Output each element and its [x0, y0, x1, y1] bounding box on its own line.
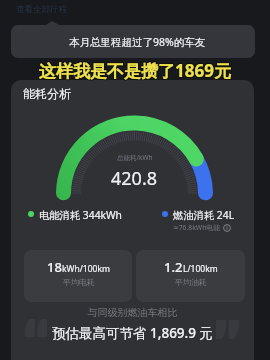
- staticText: 总能耗/kWh: [117, 153, 153, 162]
- staticText: 18: [47, 258, 62, 276]
- staticText: kWh/100km: [62, 263, 110, 275]
- staticText: 查看全部行程: [16, 4, 67, 15]
- staticText: 平均电耗: [63, 277, 95, 287]
- button[interactable]: 能耗换算说明: [222, 223, 231, 232]
- staticText: 这样我是不是攒了1869元: [39, 59, 231, 82]
- staticText: 这样我是不是攒了1869元: [40, 59, 232, 82]
- staticText: 能耗分析: [23, 86, 71, 101]
- staticText: 预估最高可节省 1,869.9 元: [11, 324, 254, 342]
- staticText: 这样我是不是攒了1869元: [38, 58, 230, 81]
- staticText: 这样我是不是攒了1869元: [40, 60, 232, 83]
- staticText: 这样我是不是攒了1869元: [39, 60, 231, 83]
- staticText: 1.2: [164, 258, 183, 276]
- staticText: ≈76.8kWh电能: [173, 223, 220, 232]
- staticText: 这样我是不是攒了1869元: [38, 60, 230, 83]
- button[interactable]: [11, 25, 255, 58]
- staticText: 这样我是不是攒了1869元: [40, 58, 232, 81]
- staticText: 这样我是不是攒了1869元: [38, 59, 230, 82]
- staticText: 这样我是不是攒了1869元: [39, 58, 231, 81]
- staticText: L/100km: [183, 263, 218, 275]
- staticText: 420.8: [111, 166, 158, 191]
- button[interactable]: 1.2: [136, 250, 245, 302]
- staticText: 本月总里程超过了98%的车友: [69, 35, 206, 49]
- staticText: 平均油耗: [175, 277, 207, 287]
- button[interactable]: 查看全部行程: [14, 2, 69, 17]
- staticText: 电能消耗 344kWh: [39, 208, 122, 222]
- staticText: 燃油消耗 24L: [173, 208, 235, 222]
- staticText: 与同级别燃油车相比: [11, 306, 254, 319]
- button[interactable]: 18: [24, 250, 132, 302]
